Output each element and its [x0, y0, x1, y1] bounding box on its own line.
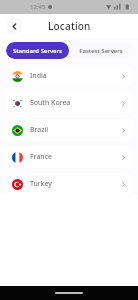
staticText: South Korea [30, 98, 71, 108]
button[interactable]: India [5, 65, 133, 87]
staticText: France [30, 152, 52, 162]
staticText: Brazil [30, 125, 49, 135]
staticText: Fastest Servers [79, 47, 123, 55]
button[interactable]: Fastest Servers [69, 42, 132, 59]
staticText: Turkey [30, 179, 52, 189]
button[interactable]: South Korea [5, 92, 133, 114]
staticText: Standard Servers [13, 47, 62, 55]
staticText: 12:45 [30, 3, 46, 11]
staticText: India [30, 71, 47, 81]
button[interactable]: France [5, 146, 133, 168]
button[interactable]: Brazil [5, 119, 133, 141]
button[interactable]: Back [6, 18, 22, 34]
staticText: Location [48, 19, 91, 33]
button[interactable]: Standard Servers [6, 42, 69, 59]
button[interactable]: Turkey [5, 173, 133, 195]
